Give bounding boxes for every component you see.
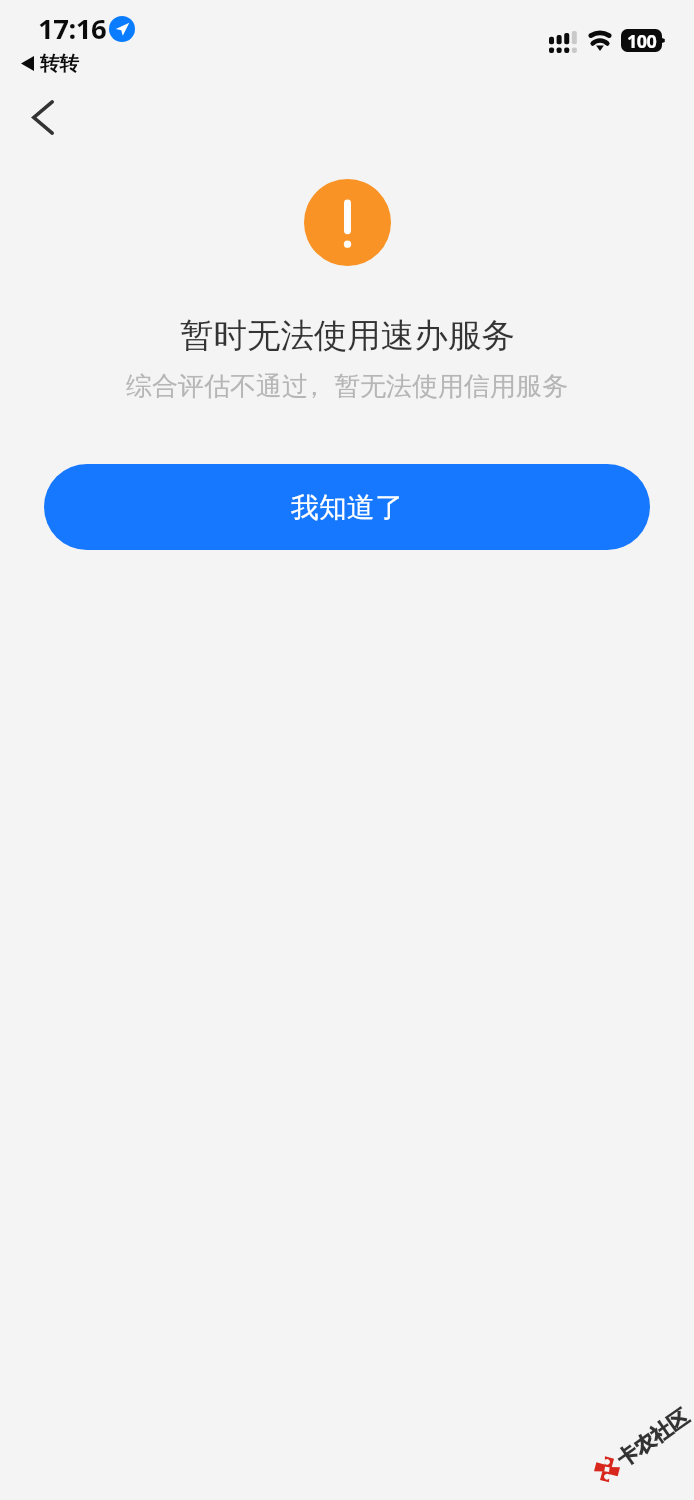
staticText: ， xyxy=(301,370,327,403)
staticText: 综合评估不通过 xyxy=(126,370,308,403)
staticText: 我知道了 xyxy=(291,490,403,525)
button[interactable]: Back xyxy=(13,87,73,147)
staticText: 卡农社区 xyxy=(612,1404,694,1472)
staticText: 转转 xyxy=(40,51,79,76)
staticText: 暂无法使用信用服务 xyxy=(334,370,568,403)
staticText: 100 xyxy=(627,29,657,52)
button[interactable]: 我知道了 xyxy=(44,464,650,550)
staticText: 暂时无法使用速办服务 xyxy=(180,315,515,357)
staticText: 17:16 xyxy=(38,10,107,47)
